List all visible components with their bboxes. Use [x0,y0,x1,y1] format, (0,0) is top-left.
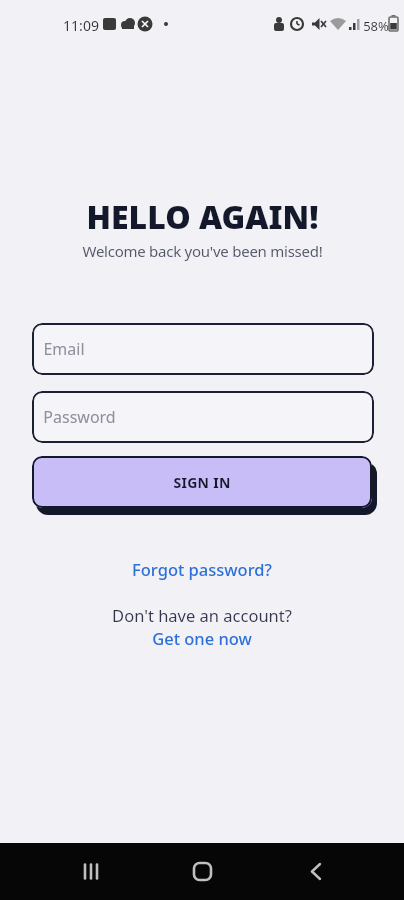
button[interactable] [0,843,134,900]
staticText: Password [43,406,116,428]
staticText: Don't have an account? [112,604,292,626]
staticText: HELLO AGAIN! [86,195,319,239]
staticText: Forgot password? [132,558,272,580]
staticText: 58% [363,17,389,35]
button[interactable]: Email [32,323,374,375]
staticText: 11:09 [63,16,99,35]
button[interactable] [134,843,269,900]
button[interactable]: SIGN IN [32,456,372,508]
staticText: Email [43,338,85,360]
button[interactable] [269,843,404,900]
staticText: Get one now [152,627,252,649]
staticText: Welcome back you've been missed! [82,241,323,261]
button[interactable]: Get one now [152,627,252,649]
button[interactable]: Password [32,391,374,443]
button[interactable]: Forgot password? [132,558,272,580]
staticText: SIGN IN [173,473,231,492]
